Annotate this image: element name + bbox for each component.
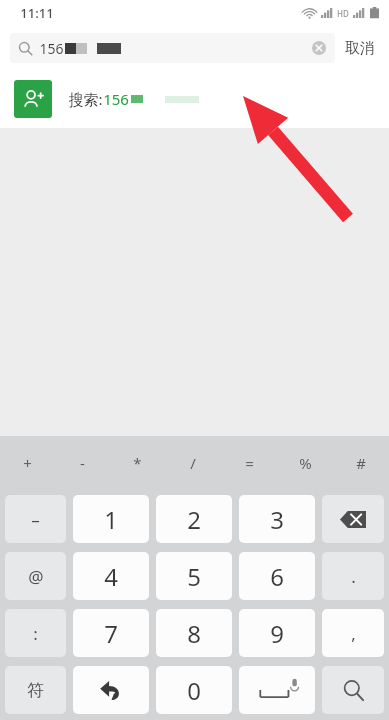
staticText: 符 — [27, 680, 44, 701]
staticText: 搜索: — [68, 89, 103, 109]
button[interactable]: 取消 — [335, 39, 379, 58]
button[interactable]: – — [5, 495, 66, 543]
button[interactable]: / — [165, 436, 221, 490]
staticText: 156 — [103, 89, 129, 109]
button[interactable]: 9 — [239, 609, 315, 657]
button[interactable]: : — [5, 609, 66, 657]
button[interactable]: enter — [73, 666, 149, 714]
button[interactable]: % — [277, 436, 333, 490]
staticText: 1 — [104, 503, 118, 536]
button[interactable]: @ — [5, 552, 66, 600]
staticText: # — [356, 453, 366, 473]
staticText: 9 — [270, 617, 284, 650]
staticText: 3 — [270, 503, 284, 536]
button[interactable]: 符 — [5, 666, 66, 714]
staticText: HD — [337, 8, 349, 19]
button[interactable]: search — [322, 666, 384, 714]
staticText: + — [23, 453, 32, 473]
staticText: . — [351, 565, 356, 588]
button[interactable]: + — [0, 436, 55, 490]
button[interactable]: 搜索: — [0, 70, 389, 128]
staticText: - — [80, 453, 85, 473]
staticText: 取消 — [345, 39, 375, 58]
staticText: 8 — [187, 617, 201, 650]
button[interactable]: 1 — [73, 495, 149, 543]
button[interactable]: 6 — [239, 552, 315, 600]
button[interactable]: space — [239, 666, 315, 714]
staticText: 0 — [187, 674, 201, 707]
staticText: 11:11 — [20, 4, 54, 22]
staticText: * — [133, 453, 142, 473]
staticText: 156 — [39, 39, 64, 58]
button[interactable]: 8 — [156, 609, 232, 657]
staticText: 4 — [104, 560, 118, 593]
staticText: – — [31, 508, 40, 531]
button[interactable]: 156 — [10, 33, 335, 63]
button[interactable]: * — [110, 436, 165, 490]
staticText: : — [33, 622, 38, 645]
button[interactable]: # — [333, 436, 389, 490]
staticText: / — [190, 453, 196, 473]
button[interactable]: 5 — [156, 552, 232, 600]
button[interactable]: 4 — [73, 552, 149, 600]
button[interactable]: backspace — [322, 495, 384, 543]
staticText: % — [299, 453, 312, 473]
button[interactable]: - — [55, 436, 110, 490]
button[interactable]: 0 — [156, 666, 232, 714]
button[interactable]: 7 — [73, 609, 149, 657]
staticText: , — [351, 622, 356, 645]
button[interactable]: , — [322, 609, 384, 657]
staticText: 7 — [104, 617, 118, 650]
staticText: = — [245, 453, 254, 473]
button[interactable]: = — [221, 436, 277, 490]
staticText: 2 — [187, 503, 201, 536]
staticText: @ — [28, 565, 44, 588]
staticText: 5 — [187, 560, 201, 593]
button[interactable]: Clear — [311, 40, 327, 56]
staticText: 6 — [270, 560, 284, 593]
button[interactable]: 2 — [156, 495, 232, 543]
button[interactable]: 3 — [239, 495, 315, 543]
button[interactable]: . — [322, 552, 384, 600]
